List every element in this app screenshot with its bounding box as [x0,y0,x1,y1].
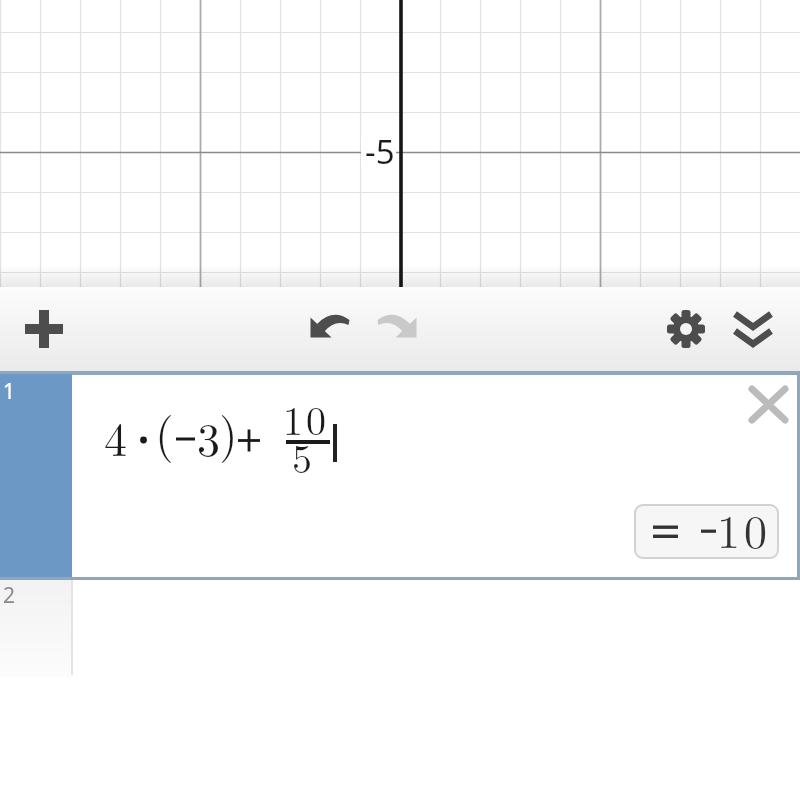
staticText: ( [155,397,174,465]
staticText: 1 [3,377,16,406]
button[interactable]: 2 [0,580,73,677]
staticText: 5 [292,428,312,485]
button[interactable] [72,375,796,578]
button[interactable] [634,504,779,559]
button[interactable]: 1 [0,374,72,577]
button[interactable] [305,305,353,353]
staticText: 3 [197,404,220,469]
staticText: -5 [365,129,395,174]
button[interactable] [662,305,710,353]
staticText: 2 [3,581,16,610]
staticText: 10 [715,496,769,561]
button[interactable] [744,382,792,430]
button[interactable] [729,305,777,353]
staticText: 4 [104,404,127,469]
button[interactable] [374,305,422,353]
button[interactable] [20,305,68,353]
staticText: ) [219,397,238,465]
staticText: 10 [283,390,329,447]
